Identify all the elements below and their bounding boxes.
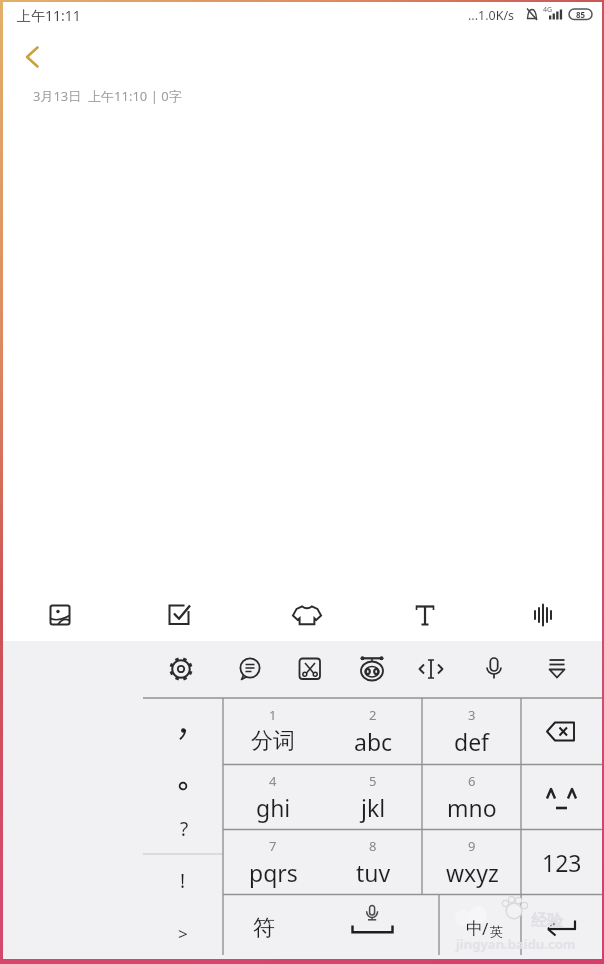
staticText: 2 (369, 706, 377, 724)
staticText: tuv (356, 857, 391, 888)
staticText: 4 (269, 772, 277, 790)
staticText: 上午11:11 (17, 6, 81, 25)
staticText: 1 (269, 706, 277, 724)
staticText: 3 (468, 706, 476, 724)
staticText: 85 (576, 9, 586, 20)
staticText: 符 (253, 914, 275, 942)
staticText: abc (354, 726, 393, 757)
staticText: 分词 (251, 727, 295, 755)
staticText: wxyz (446, 857, 499, 888)
staticText: 9 (468, 837, 476, 855)
staticText: ghi (256, 792, 291, 823)
staticText: / (482, 917, 489, 940)
staticText: 8 (369, 837, 377, 855)
staticText: 中 (466, 918, 483, 939)
staticText: 5 (369, 772, 377, 790)
staticText: 经验 (531, 911, 563, 931)
staticText: 4G (543, 5, 553, 15)
staticText: ? (180, 816, 189, 842)
staticText: def (454, 726, 490, 757)
staticText: ! (180, 868, 186, 894)
staticText: 7 (269, 837, 277, 855)
staticText: 123 (542, 847, 582, 878)
staticText: jingyan.baidu.com (456, 935, 576, 953)
staticText: ...1.0K/s (468, 7, 515, 24)
staticText: mno (447, 792, 497, 823)
staticText: pqrs (249, 857, 298, 888)
staticText: 3月13日 上午11:10 | 0字 (33, 87, 182, 105)
staticText: jkl (361, 792, 386, 823)
staticText: 英 (490, 923, 503, 939)
staticText: > (178, 922, 188, 945)
staticText: 6 (468, 772, 476, 790)
